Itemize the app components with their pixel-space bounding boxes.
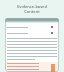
staticText: Evidence-based Content <box>0 4 64 14</box>
button[interactable] <box>5 30 59 36</box>
button[interactable] <box>5 24 59 30</box>
